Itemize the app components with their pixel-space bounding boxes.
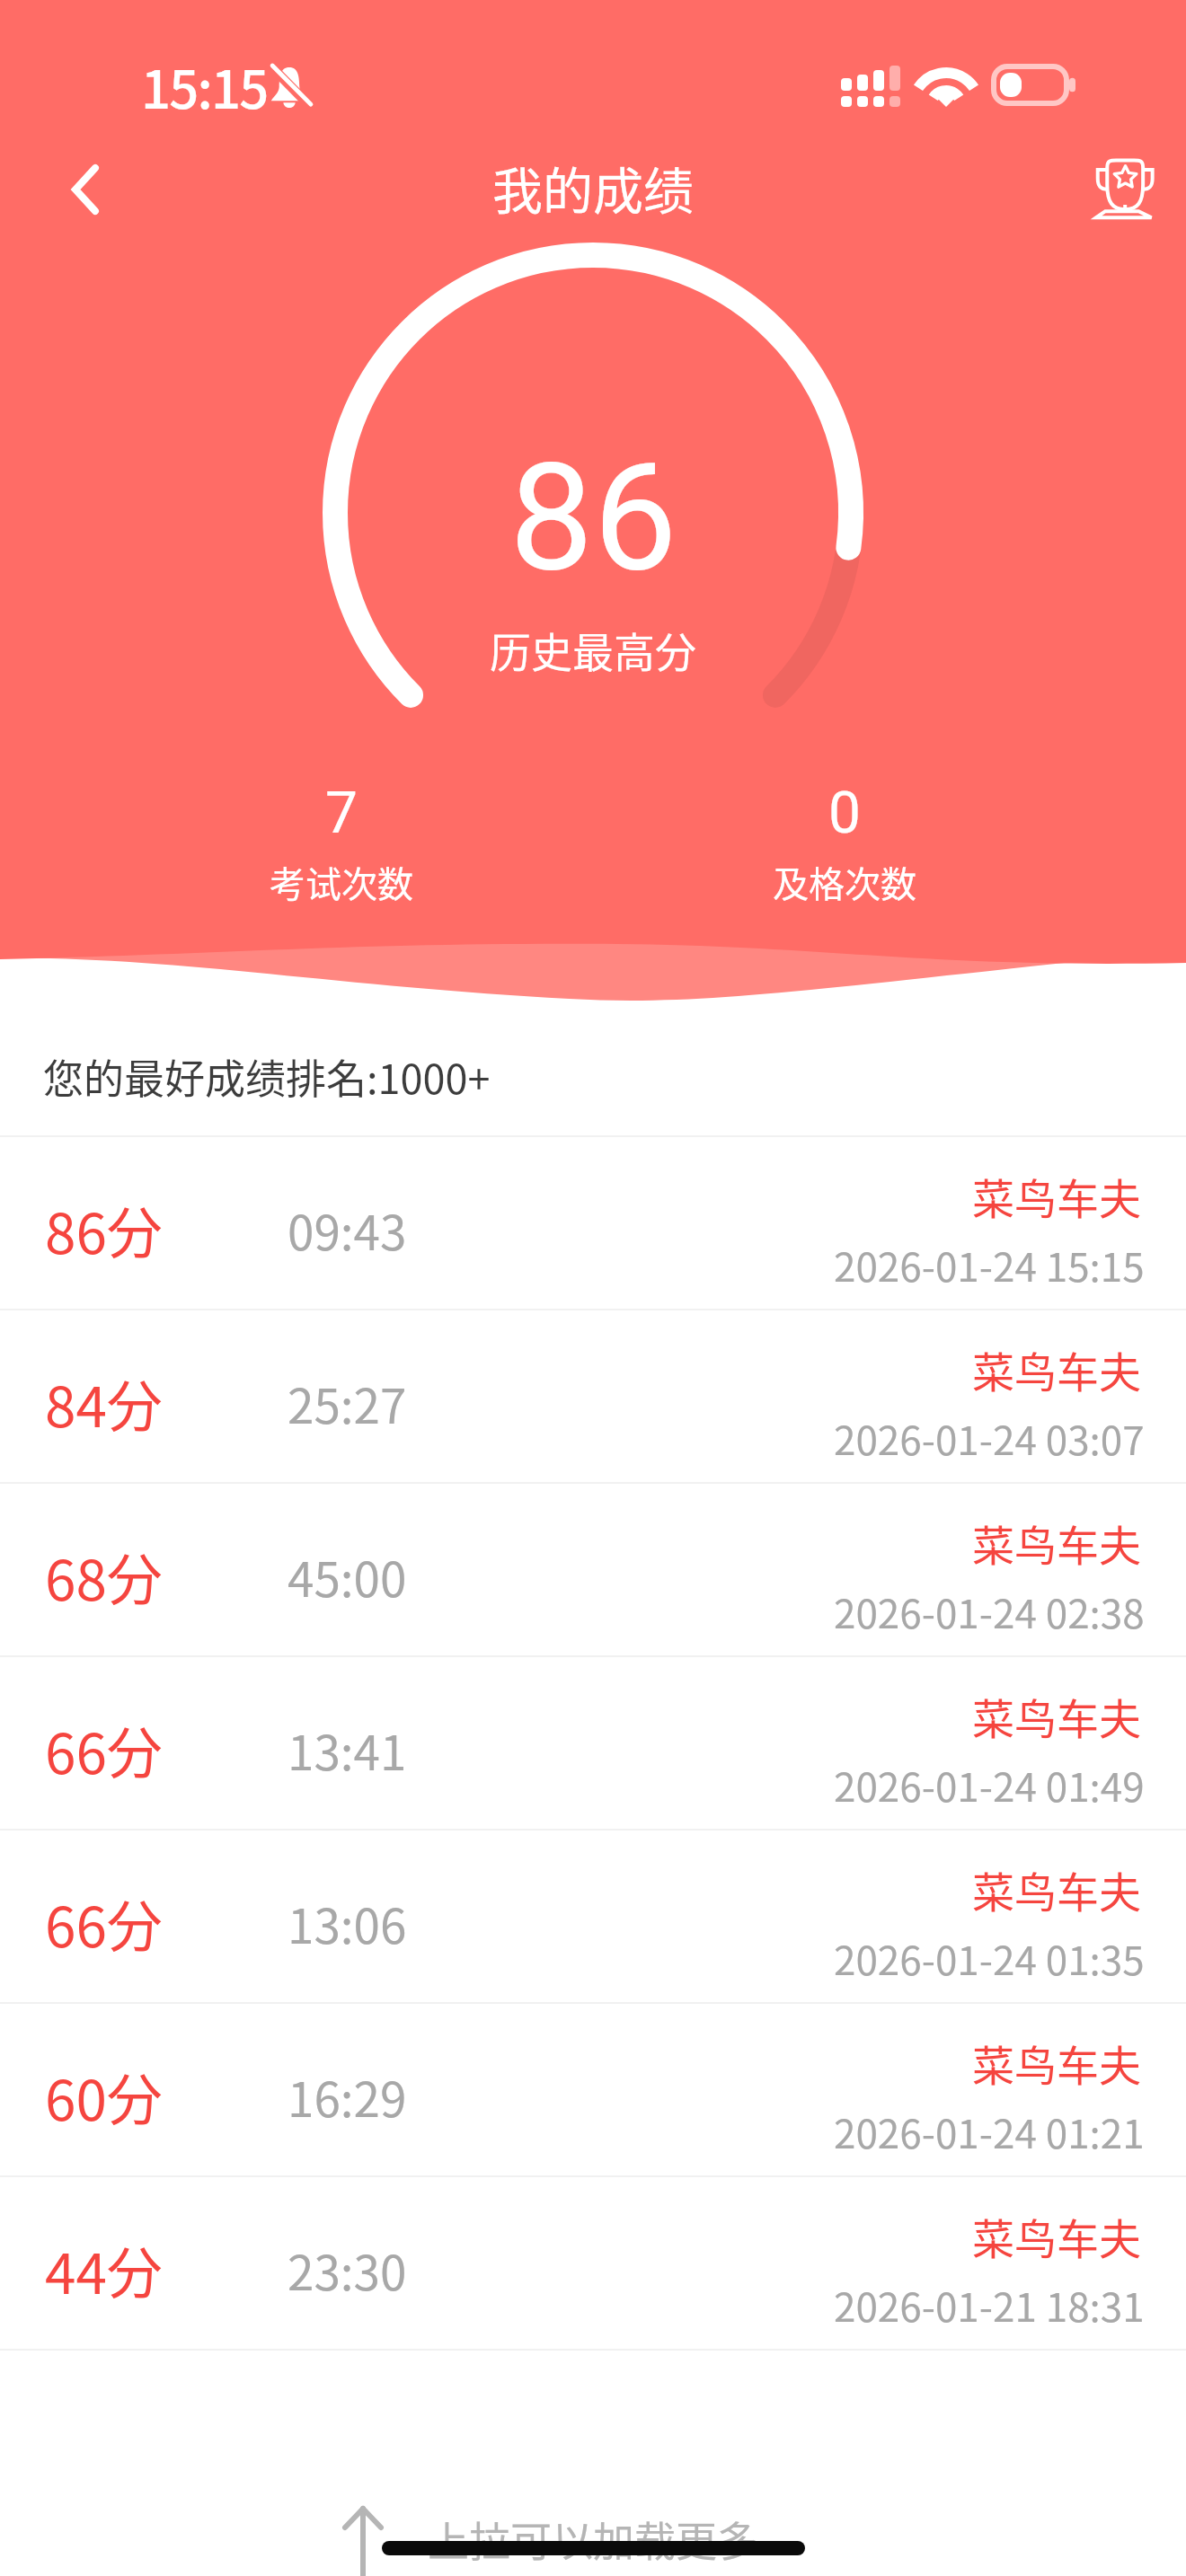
staticText: 2026-01-21 18:31: [834, 2276, 1145, 2333]
staticText: 2026-01-24 02:38: [834, 1583, 1145, 1640]
staticText: 68分: [45, 1536, 163, 1617]
staticText: 我的成绩: [492, 151, 694, 224]
staticText: 13:41: [288, 1716, 407, 1785]
staticText: 上拉可以加载更多: [428, 2509, 758, 2569]
staticText: 60分: [45, 2056, 163, 2137]
staticText: 菜鸟车夫: [972, 1338, 1141, 1399]
staticText: 菜鸟车夫: [972, 1858, 1141, 1919]
staticText: 菜鸟车夫: [972, 1685, 1141, 1746]
staticText: 菜鸟车夫: [972, 2032, 1141, 2093]
staticText: 45:00: [288, 1542, 407, 1611]
button[interactable]: 86分: [0, 1137, 1186, 1310]
staticText: 25:27: [288, 1369, 407, 1438]
staticText: 86: [509, 430, 677, 605]
button[interactable]: 68分: [0, 1484, 1186, 1657]
staticText: 2026-01-24 03:07: [834, 1409, 1145, 1467]
staticText: 66分: [45, 1883, 163, 1963]
staticText: 84分: [45, 1363, 163, 1443]
staticText: 2026-01-24 01:49: [834, 1756, 1145, 1813]
staticText: 2026-01-24 01:35: [834, 1929, 1145, 1987]
staticText: 23:30: [288, 2236, 407, 2305]
button[interactable]: 66分: [0, 1831, 1186, 2004]
button[interactable]: Back: [0, 131, 144, 257]
staticText: 44分: [45, 2229, 163, 2310]
button[interactable]: 60分: [0, 2004, 1186, 2177]
staticText: 2026-01-24 01:21: [834, 2103, 1145, 2160]
staticText: 考试次数: [270, 856, 413, 908]
staticText: 09:43: [288, 1195, 407, 1265]
staticText: 66分: [45, 1709, 163, 1790]
staticText: 历史最高分: [490, 620, 696, 680]
staticText: 菜鸟车夫: [972, 1512, 1141, 1573]
staticText: 菜鸟车夫: [972, 1165, 1141, 1226]
staticText: 您的最好成绩排名:1000+: [43, 1047, 491, 1106]
staticText: 0: [828, 780, 861, 847]
staticText: 13:06: [288, 1889, 407, 1958]
button[interactable]: 84分: [0, 1310, 1186, 1484]
staticText: 86分: [45, 1189, 163, 1270]
staticText: 16:29: [288, 2062, 407, 2131]
staticText: 及格次数: [773, 856, 916, 908]
button[interactable]: 44分: [0, 2177, 1186, 2351]
staticText: 2026-01-24 15:15: [834, 1236, 1145, 1293]
staticText: 7: [325, 780, 358, 847]
staticText: 15:15: [141, 49, 268, 124]
button[interactable]: 66分: [0, 1657, 1186, 1831]
staticText: 菜鸟车夫: [972, 2205, 1141, 2266]
button[interactable]: Leaderboard: [1051, 131, 1186, 257]
